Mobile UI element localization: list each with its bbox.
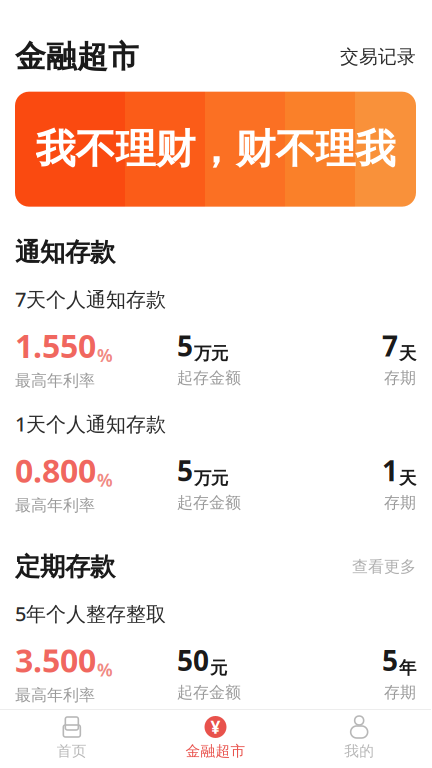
staticText: 5: [177, 452, 193, 489]
staticText: 1.550: [15, 324, 96, 367]
staticText: 5: [177, 327, 193, 364]
staticText: 起存金额: [177, 368, 241, 388]
button[interactable]: 5年个人整存整取: [0, 590, 431, 715]
button[interactable]: ¥: [144, 710, 287, 768]
staticText: 定期存款: [15, 551, 115, 582]
staticText: 元: [210, 657, 227, 679]
staticText: 1: [382, 452, 398, 489]
staticText: %: [97, 658, 113, 681]
staticText: 5年个人整存整取: [15, 600, 166, 627]
staticText: 万元: [194, 468, 228, 489]
button[interactable]: 我的: [287, 710, 431, 768]
staticText: 存期: [384, 683, 416, 702]
staticText: 存期: [384, 368, 416, 388]
staticText: 7: [382, 327, 398, 364]
staticText: 最高年利率: [15, 685, 95, 705]
staticText: 我不理财，财不理我: [35, 125, 395, 174]
button[interactable]: 首页: [0, 710, 144, 768]
staticText: 天: [399, 343, 416, 364]
staticText: 首页: [57, 742, 87, 760]
staticText: 金融超市: [185, 742, 245, 760]
staticText: 3.500: [15, 639, 96, 681]
staticText: 3年个人整存整取: [15, 725, 166, 752]
staticText: 交易记录: [340, 45, 416, 68]
staticText: 年: [399, 657, 416, 679]
staticText: 天: [399, 468, 416, 489]
button[interactable]: 1天个人通知存款: [0, 400, 431, 525]
staticText: 我的: [344, 742, 374, 760]
button[interactable]: 交易记录: [328, 39, 416, 74]
staticText: 最高年利率: [15, 495, 95, 515]
button[interactable]: 3年个人整存整取: [0, 715, 431, 768]
staticText: 金融超市: [15, 38, 139, 76]
staticText: 1天个人通知存款: [15, 410, 166, 437]
staticText: ¥: [210, 715, 220, 738]
button[interactable]: 7天个人通知存款: [0, 276, 431, 400]
staticText: %: [97, 344, 113, 367]
staticText: 起存金额: [177, 493, 241, 513]
staticText: 起存金额: [177, 683, 241, 702]
staticText: 存期: [384, 493, 416, 513]
staticText: 0.800: [15, 449, 96, 492]
staticText: 万元: [194, 343, 228, 364]
staticText: %: [97, 468, 113, 491]
staticText: 7天个人通知存款: [15, 286, 166, 312]
staticText: 5: [382, 641, 398, 679]
staticText: 查看更多: [352, 557, 416, 577]
staticText: 50: [177, 641, 209, 679]
button[interactable]: 我不理财，财不理我: [15, 92, 416, 207]
button[interactable]: 查看更多: [342, 553, 416, 581]
staticText: 通知存款: [15, 237, 115, 268]
staticText: 最高年利率: [15, 371, 95, 390]
